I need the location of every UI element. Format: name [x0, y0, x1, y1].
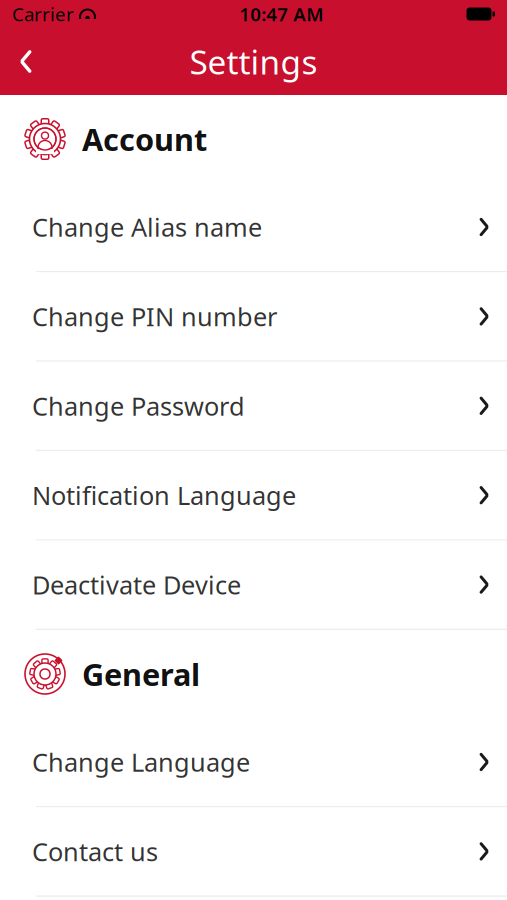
staticText: Change PIN number	[32, 300, 277, 333]
staticText: Carrier	[12, 2, 74, 26]
button[interactable]: Change PIN number	[0, 272, 507, 360]
staticText: Change Password	[32, 389, 245, 423]
button[interactable]: Contact us	[0, 807, 507, 895]
button[interactable]: Change Password	[0, 362, 507, 450]
staticText: Deactivate Device	[32, 568, 241, 601]
button[interactable]: Change Alias name	[0, 183, 507, 271]
staticText: Change Language	[32, 745, 250, 779]
staticText: Contact us	[32, 835, 158, 868]
staticText: Notification Language	[32, 478, 296, 512]
button[interactable]: Change Language	[0, 718, 507, 806]
staticText: Change Alias name	[32, 210, 262, 244]
button[interactable]: Deactivate Device	[0, 541, 507, 629]
staticText: Account	[82, 119, 207, 159]
button[interactable]: Notification Language	[0, 451, 507, 539]
staticText: 10:47 AM	[239, 2, 323, 26]
staticText: Settings	[189, 39, 317, 84]
button[interactable]: Back	[0, 28, 52, 95]
staticText: General	[82, 654, 200, 694]
